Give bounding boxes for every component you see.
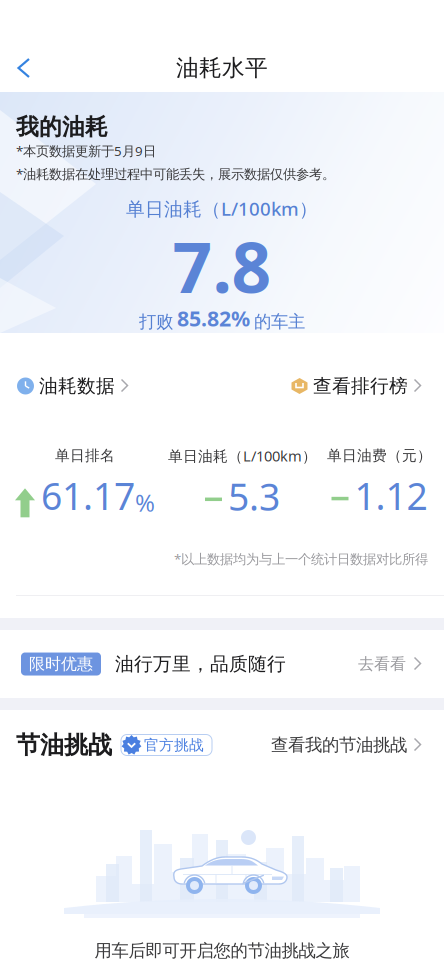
- staticText: *本页数据更新于5月9日: [16, 142, 156, 160]
- staticText: 7.8: [172, 220, 271, 312]
- button[interactable]: 限时优惠: [0, 630, 444, 698]
- staticText: 61.17: [41, 471, 135, 520]
- staticText: 官方挑战: [144, 736, 204, 754]
- staticText: *油耗数据在处理过程中可能丢失，展示数据仅供参考。: [16, 165, 335, 183]
- staticText: 油耗数据: [39, 374, 115, 397]
- staticText: 单日油费（元）: [327, 447, 432, 465]
- staticText: 单日油耗（L/100km）: [168, 446, 317, 465]
- staticText: 单日油耗（L/100km）: [126, 196, 318, 221]
- button[interactable]: 返回: [0, 44, 48, 92]
- staticText: 油行万里，品质随行: [115, 652, 286, 675]
- staticText: 5.3: [228, 471, 280, 521]
- staticText: %: [135, 486, 155, 518]
- staticText: 85.82%: [177, 304, 250, 332]
- staticText: 单日排名: [55, 447, 115, 465]
- staticText: *以上数据均为与上一个统计日数据对比所得: [174, 550, 428, 568]
- staticText: 用车后即可开启您的节油挑战之旅: [94, 940, 349, 960]
- staticText: 查看排行榜: [313, 374, 408, 397]
- staticText: 限时优惠: [29, 654, 93, 674]
- staticText: 1.12: [354, 471, 427, 520]
- staticText: 打败: [139, 311, 173, 332]
- staticText: 我的油耗: [16, 113, 108, 141]
- staticText: 油耗水平: [176, 54, 268, 82]
- staticText: 节油挑战: [16, 730, 112, 760]
- button[interactable]: 查看我的节油挑战: [271, 734, 425, 756]
- staticText: 的车主: [254, 311, 305, 332]
- staticText: 去看看: [358, 654, 406, 674]
- button[interactable]: 查看排行榜: [291, 374, 425, 397]
- button[interactable]: 油耗数据: [17, 374, 132, 397]
- staticText: 查看我的节油挑战: [271, 734, 407, 756]
